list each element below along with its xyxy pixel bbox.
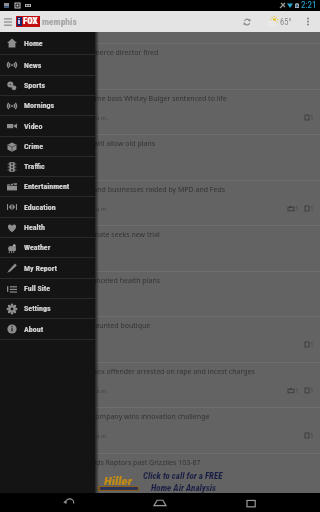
staticText: 9:02 a.m. — [70, 158, 96, 166]
button[interactable]: Several Memphis-area restaurants and bus… — [0, 181, 320, 226]
button[interactable]: Entertainment — [0, 177, 95, 196]
staticText: News — [24, 61, 42, 70]
staticText: 6:02 a.m. — [70, 341, 96, 349]
staticText: 1 — [295, 204, 299, 213]
staticText: 10:54 a.m. — [79, 205, 109, 213]
staticText: Health — [24, 223, 45, 232]
staticText: Traffic — [24, 162, 45, 171]
button[interactable]: News — [0, 55, 95, 75]
staticText: Crime — [24, 142, 43, 151]
staticText: Tennessee death row inmate seeks new tri… — [15, 230, 160, 239]
staticText: 2:21 — [301, 0, 317, 11]
button[interactable]: Former Boston organized crime boss White… — [0, 90, 320, 135]
staticText: Convicted Memphis sex offender arrested … — [27, 367, 255, 376]
staticText: Entertainment — [24, 182, 70, 191]
staticText: Lowry leads Raptors past Grizzlies 103-8… — [65, 458, 201, 467]
button[interactable]: Settings — [0, 299, 95, 318]
button[interactable]: Open navigation drawer — [0, 11, 16, 32]
button[interactable]: Video — [0, 116, 95, 136]
staticText: Mornings — [24, 101, 55, 110]
button[interactable]: My Report — [0, 258, 95, 278]
button[interactable]: More options — [299, 11, 316, 32]
staticText: Full Site — [24, 284, 51, 293]
staticText: FOX — [23, 16, 38, 27]
button[interactable]: Crime — [0, 137, 95, 156]
staticText: i — [18, 17, 21, 26]
button[interactable]: Full Site — [0, 279, 95, 298]
staticText: 8:11 a.m. — [70, 249, 96, 257]
staticText: 1 — [310, 340, 314, 349]
button[interactable]: Tennessee death row inmate seeks new tri… — [0, 226, 320, 272]
button[interactable]: About — [0, 319, 95, 339]
staticText: Video — [24, 122, 43, 131]
staticText: Click to call for a FREE — [143, 471, 223, 482]
staticText: 1 — [310, 386, 314, 395]
button[interactable]: Recent apps — [228, 493, 276, 512]
staticText: Cooper-Young neighborhood gets haunted b… — [0, 321, 151, 330]
button[interactable]: Back — [44, 493, 92, 512]
button[interactable]: Weather, 65 degrees — [266, 16, 292, 28]
staticText: Insurance company reinstates canceled he… — [0, 276, 161, 285]
button[interactable]: Memphis Convention and Visitors Bureau c… — [0, 44, 320, 90]
button[interactable]: Lowry leads Raptors past Grizzlies 103-8… — [0, 454, 320, 471]
staticText: Memphis Convention and Visitors Bureau c… — [0, 48, 159, 57]
staticText: Home Air Analysis — [151, 483, 216, 493]
staticText: 1 — [310, 204, 314, 213]
staticText: Weather — [24, 243, 51, 252]
staticText: Sports — [24, 81, 46, 90]
staticText: Obama says insurance companies will allo… — [0, 139, 156, 148]
button[interactable]: Insurance company reinstates canceled he… — [0, 272, 320, 317]
staticText: Settings — [24, 304, 51, 313]
button[interactable]: Home — [136, 493, 184, 512]
button[interactable]: Sports — [0, 76, 95, 95]
button[interactable]: Advertisement: Click to call for a free … — [96, 471, 224, 493]
staticText: 1 — [310, 431, 314, 440]
staticText: My Report — [24, 264, 57, 273]
staticText: 11:04 a.m. — [79, 387, 109, 395]
staticText: Home — [24, 39, 43, 48]
staticText: 7:24 a.m. — [70, 295, 96, 303]
button[interactable]: Education — [0, 197, 95, 217]
button[interactable]: Convicted Memphis sex offender arrested … — [0, 363, 320, 408]
staticText: Education — [24, 203, 56, 212]
staticText: 1 — [295, 386, 299, 395]
staticText: About — [24, 325, 44, 334]
staticText: 10:35 a.m. — [79, 114, 109, 122]
staticText: 1 — [310, 113, 314, 122]
button[interactable]: Traffic — [0, 157, 95, 176]
button[interactable]: Obama says insurance companies will allo… — [0, 135, 320, 181]
staticText: memphis — [42, 16, 77, 27]
staticText: Former Boston organized crime boss White… — [1, 94, 227, 103]
button[interactable]: Home — [0, 32, 95, 54]
staticText: 9:38 a.m. — [70, 67, 96, 75]
staticText: 10:14 a.m. — [79, 432, 109, 440]
button[interactable]: Refresh — [239, 11, 255, 32]
staticText: Hiller — [104, 474, 133, 485]
button[interactable]: Memphis-based technology company wins in… — [0, 408, 320, 454]
button[interactable]: Mornings — [0, 96, 95, 115]
button[interactable]: Health — [0, 218, 95, 237]
staticText: 65° — [280, 17, 292, 27]
staticText: Several Memphis-area restaurants and bus… — [0, 185, 226, 194]
staticText: Memphis-based technology company wins in… — [0, 412, 210, 421]
button[interactable]: Cooper-Young neighborhood gets haunted b… — [0, 317, 320, 363]
button[interactable]: Weather — [0, 238, 95, 257]
